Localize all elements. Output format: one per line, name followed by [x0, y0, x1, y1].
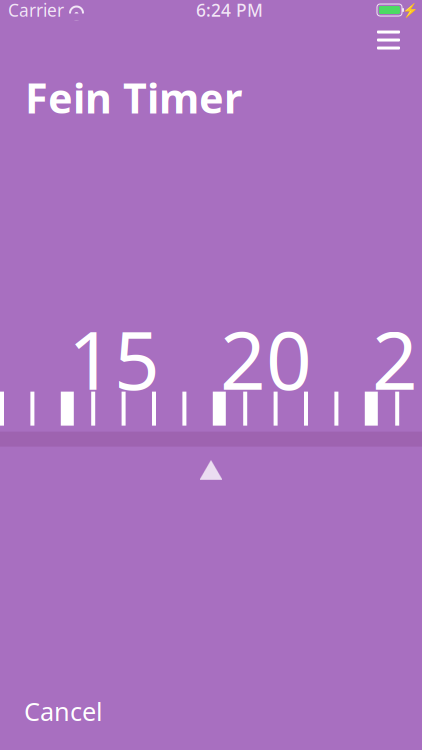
- staticText: Cancel: [24, 694, 103, 728]
- staticText: 25: [372, 305, 422, 412]
- button[interactable]: Menu: [367, 20, 410, 59]
- button[interactable]: Cancel: [20, 684, 107, 738]
- staticText: Fein Timer: [25, 70, 242, 125]
- staticText: Carrier: [8, 0, 64, 21]
- staticText: 15: [68, 305, 160, 412]
- staticText: ⚡: [401, 2, 418, 18]
- staticText: 6:24 PM: [196, 0, 263, 21]
- staticText: 20: [220, 305, 312, 412]
